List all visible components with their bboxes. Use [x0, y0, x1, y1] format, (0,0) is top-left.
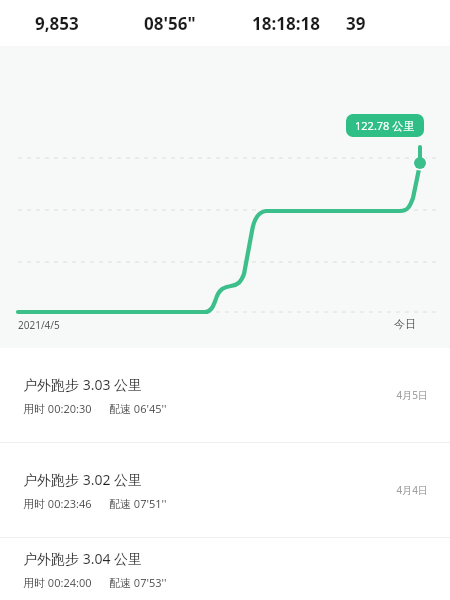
- staticText: 2021/4/5: [18, 318, 60, 332]
- staticText: 配速 07'51'': [109, 496, 167, 511]
- staticText: 用时 00:23:46: [23, 496, 92, 511]
- staticText: 户外跑步 3.04 公里: [23, 549, 143, 568]
- button[interactable]: 户外跑步 3.02 公里: [0, 443, 450, 537]
- button[interactable]: 户外跑步 3.03 公里: [0, 348, 450, 442]
- staticText: 配速 07'53'': [109, 575, 167, 590]
- staticText: 今日: [394, 317, 416, 331]
- staticText: 4月5日: [396, 388, 428, 402]
- staticText: 4月4日: [396, 483, 428, 497]
- staticText: 122.78 公里: [355, 118, 415, 133]
- staticText: 9,853: [35, 12, 79, 35]
- staticText: 配速 06'45'': [109, 401, 167, 416]
- staticText: 户外跑步 3.03 公里: [23, 375, 143, 394]
- button[interactable]: 122.78 公里: [346, 114, 424, 137]
- button[interactable]: 122.78 公里: [0, 46, 450, 348]
- staticText: 08'56": [144, 12, 196, 35]
- staticText: 18:18:18: [252, 12, 320, 35]
- staticText: 用时 00:24:00: [23, 575, 92, 590]
- staticText: 用时 00:20:30: [23, 401, 92, 416]
- staticText: 39: [346, 12, 366, 35]
- button[interactable]: 户外跑步 3.04 公里: [0, 538, 450, 600]
- staticText: 户外跑步 3.02 公里: [23, 470, 143, 489]
